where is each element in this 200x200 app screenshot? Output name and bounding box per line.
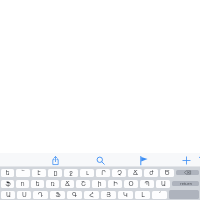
button[interactable]: ե: [1, 169, 14, 177]
button[interactable]: Օ: [124, 180, 138, 188]
staticText: Ծ: [164, 169, 170, 177]
button[interactable]: Շ: [76, 180, 90, 188]
staticText: Ա: [161, 180, 166, 188]
button[interactable]: Գ: [67, 191, 82, 199]
button[interactable]: Flag: [133, 153, 153, 167]
button[interactable]: է: [32, 169, 46, 177]
staticText: Ֆ: [55, 191, 61, 199]
button[interactable]: ը: [48, 169, 62, 177]
staticText: Ի: [113, 180, 118, 188]
button[interactable]: Ր: [96, 169, 110, 177]
staticText: ե: [35, 180, 40, 188]
button[interactable]: ի: [92, 180, 106, 188]
button[interactable]: Ծ: [160, 169, 174, 177]
button[interactable]: [176, 170, 199, 175]
button[interactable]: Ճ: [128, 169, 142, 177]
staticText: ո: [20, 180, 25, 188]
staticText: Լ: [141, 191, 145, 199]
button[interactable]: ՟: [16, 169, 30, 177]
button[interactable]: Դ: [33, 191, 48, 199]
button[interactable]: Յ: [101, 191, 116, 199]
button[interactable]: ՛: [152, 191, 167, 199]
button[interactable]: ջ: [64, 169, 78, 177]
staticText: է: [37, 169, 41, 177]
staticText: ի: [97, 180, 102, 188]
staticText: ռ: [50, 180, 55, 188]
staticText: ը: [53, 169, 58, 177]
button[interactable]: Ա: [1, 191, 15, 199]
button[interactable]: Հ: [84, 191, 99, 199]
staticText: ջ: [69, 169, 73, 177]
button[interactable]: Ի: [108, 180, 122, 188]
button[interactable]: Add: [176, 153, 196, 167]
staticText: Չ: [117, 169, 122, 177]
staticText: ֆ: [5, 180, 11, 188]
staticText: Յ: [106, 191, 111, 199]
button[interactable]: Search: [90, 153, 110, 167]
staticText: return: [180, 181, 192, 186]
staticText: Ր: [101, 169, 106, 177]
staticText: ժ: [149, 169, 154, 177]
button[interactable]: Ճ: [61, 180, 74, 188]
button[interactable]: ւ: [80, 169, 94, 177]
staticText: Ճ: [133, 169, 138, 177]
staticText: Պ: [144, 180, 150, 188]
button[interactable]: Պ: [140, 180, 154, 188]
button[interactable]: Ա: [156, 180, 170, 188]
button[interactable]: ֆ: [1, 180, 14, 188]
staticText: ւ: [86, 169, 89, 177]
staticText: ե: [5, 169, 10, 177]
staticText: Կ: [123, 191, 128, 199]
button[interactable]: ե: [31, 180, 44, 188]
staticText: Գ: [72, 191, 77, 199]
staticText: Շ: [81, 180, 86, 188]
button[interactable]: Ս: [17, 191, 31, 199]
button[interactable]: Ֆ: [50, 191, 65, 199]
staticText: Ճ: [65, 180, 70, 188]
button[interactable]: ժ: [144, 169, 158, 177]
button[interactable]: Լ: [135, 191, 150, 199]
button[interactable]: Չ: [112, 169, 126, 177]
staticText: Հ: [89, 191, 94, 199]
staticText: Դ: [38, 191, 43, 199]
staticText: ՛: [159, 191, 161, 199]
button[interactable]: Share: [45, 153, 65, 167]
button[interactable]: ո: [16, 180, 29, 188]
button[interactable]: Կ: [118, 191, 133, 199]
staticText: Ս: [22, 191, 27, 199]
staticText: Ա: [6, 191, 11, 199]
button[interactable]: ռ: [46, 180, 59, 188]
staticText: ՟: [21, 169, 25, 177]
staticText: Օ: [128, 180, 134, 188]
button[interactable]: return: [172, 181, 199, 186]
